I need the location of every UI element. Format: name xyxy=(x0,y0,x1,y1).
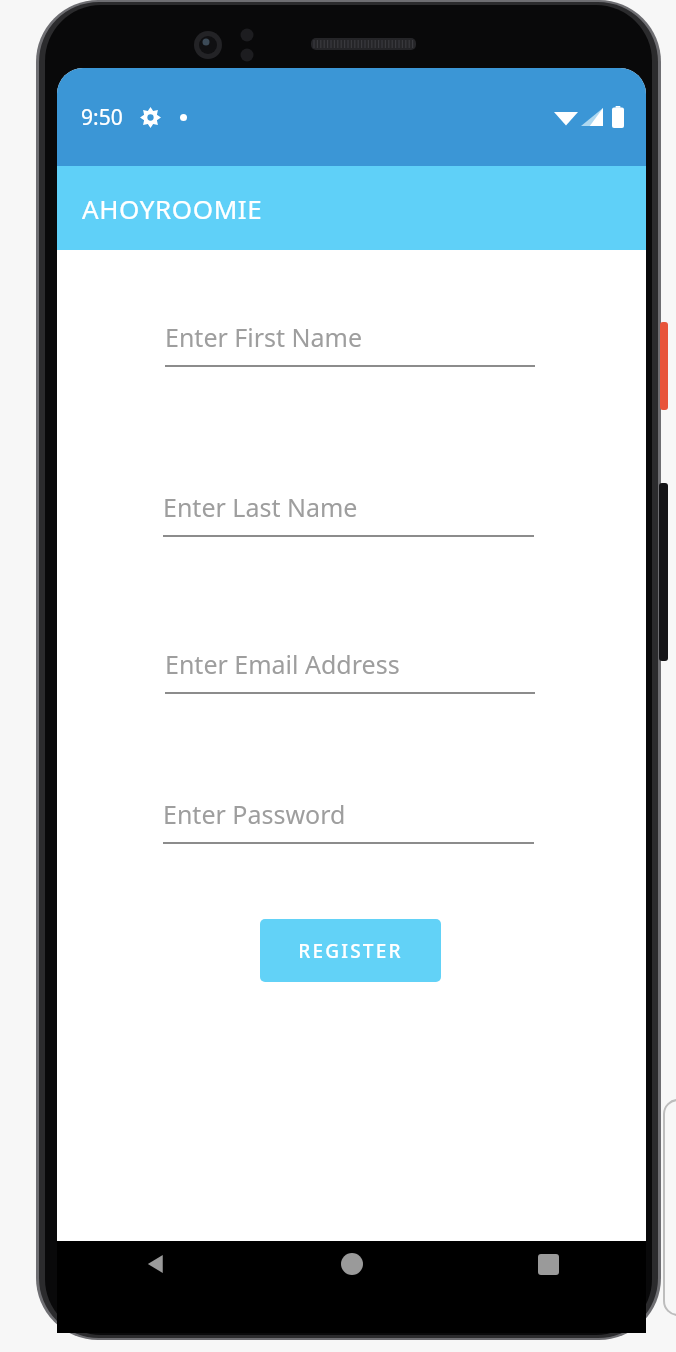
staticText: AHOYROOMIE xyxy=(82,191,263,226)
staticText: REGISTER xyxy=(298,938,403,964)
button[interactable]: Recent apps xyxy=(450,1241,646,1287)
button[interactable]: Enter Email Address xyxy=(165,647,535,694)
button[interactable]: Home xyxy=(254,1241,450,1287)
staticText: Enter Email Address xyxy=(165,647,400,681)
button[interactable]: Back xyxy=(57,1241,254,1287)
staticText: Enter Password xyxy=(163,797,346,831)
button[interactable]: Enter First Name xyxy=(165,320,535,367)
button[interactable]: Enter Password xyxy=(163,797,534,844)
button[interactable]: Enter Last Name xyxy=(163,490,534,537)
staticText: Enter Last Name xyxy=(163,490,358,524)
button[interactable]: REGISTER xyxy=(260,919,441,982)
staticText: Enter First Name xyxy=(165,320,363,354)
staticText: 9:50 xyxy=(81,103,123,132)
